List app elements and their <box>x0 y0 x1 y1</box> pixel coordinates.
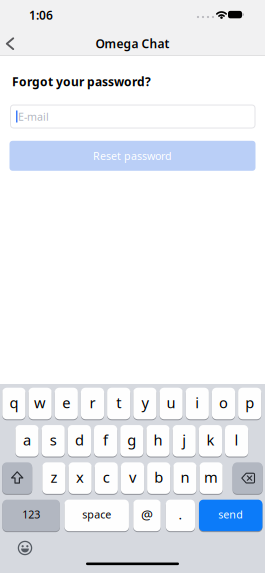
staticText: u <box>167 393 176 412</box>
button[interactable]: h <box>146 425 170 457</box>
button[interactable]: E-mail <box>10 104 255 128</box>
button[interactable]: c <box>95 462 118 494</box>
staticText: q <box>9 393 18 412</box>
staticText: Reset password <box>93 149 172 163</box>
button[interactable]: d <box>68 425 91 457</box>
staticText: e <box>62 393 70 412</box>
staticText: n <box>180 467 189 487</box>
staticText: @ <box>141 505 153 523</box>
staticText: Omega Chat <box>95 35 169 51</box>
button[interactable]: . <box>166 499 195 532</box>
button[interactable]: u <box>159 387 183 420</box>
staticText: o <box>219 393 228 412</box>
button[interactable]: @ <box>133 499 161 532</box>
button[interactable]: space <box>64 499 129 532</box>
staticText: t <box>116 393 121 412</box>
button[interactable]: f <box>94 425 117 457</box>
staticText: h <box>153 430 162 450</box>
staticText: x <box>76 467 84 487</box>
button[interactable]: Emoji <box>18 541 32 555</box>
staticText: p <box>245 393 254 412</box>
button[interactable]: Back <box>0 34 20 54</box>
button[interactable]: j <box>173 425 196 457</box>
button[interactable]: y <box>133 387 156 420</box>
staticText: Forgot your password? <box>12 73 151 89</box>
button[interactable]: s <box>42 425 65 457</box>
button[interactable]: o <box>212 387 235 420</box>
staticText: l <box>235 430 239 450</box>
staticText: m <box>204 467 218 487</box>
button[interactable]: e <box>55 387 78 420</box>
button[interactable]: w <box>28 387 52 420</box>
button[interactable]: Shift <box>2 462 32 494</box>
staticText: y <box>141 393 148 412</box>
staticText: d <box>75 430 84 450</box>
button[interactable]: r <box>81 387 104 420</box>
staticText: w <box>34 393 46 412</box>
staticText: f <box>103 430 108 450</box>
button[interactable]: send <box>199 499 262 532</box>
staticText: send <box>218 507 243 521</box>
staticText: v <box>129 467 136 487</box>
staticText: a <box>23 430 31 450</box>
staticText: s <box>50 430 57 450</box>
staticText: E-mail <box>18 109 49 124</box>
button[interactable]: b <box>147 462 170 494</box>
button[interactable]: t <box>107 387 130 420</box>
staticText: j <box>182 430 186 450</box>
button[interactable]: q <box>2 387 25 420</box>
button[interactable]: Delete <box>233 462 263 494</box>
button[interactable]: a <box>15 425 39 457</box>
button[interactable]: 123 <box>2 499 60 532</box>
button[interactable]: g <box>120 425 143 457</box>
button[interactable]: l <box>225 425 248 457</box>
button[interactable]: m <box>199 462 223 494</box>
button[interactable]: i <box>186 387 209 420</box>
button[interactable]: n <box>173 462 196 494</box>
staticText: c <box>103 467 110 487</box>
button[interactable]: k <box>199 425 222 457</box>
button[interactable]: z <box>42 462 65 494</box>
staticText: i <box>195 393 199 412</box>
staticText: 1:06 <box>29 7 53 23</box>
button[interactable]: v <box>121 462 144 494</box>
staticText: r <box>89 393 95 412</box>
staticText: 123 <box>22 507 40 521</box>
staticText: g <box>127 430 136 450</box>
staticText: space <box>82 507 111 521</box>
staticText: k <box>206 430 214 450</box>
button[interactable]: Reset password <box>9 141 255 171</box>
staticText: b <box>154 467 163 487</box>
button[interactable]: x <box>68 462 92 494</box>
button[interactable]: p <box>238 387 261 420</box>
staticText: z <box>50 467 57 487</box>
staticText: . <box>178 505 182 523</box>
